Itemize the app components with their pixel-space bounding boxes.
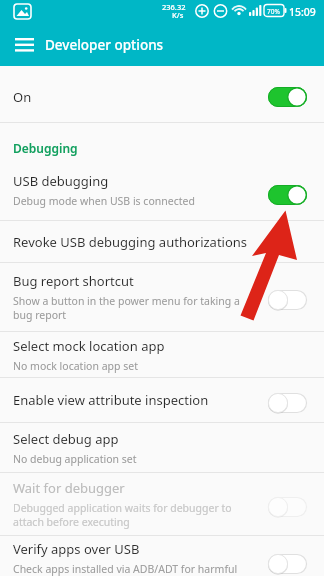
- button[interactable]: Select mock location app: [0, 332, 324, 377]
- button[interactable]: Bug report shortcut: [0, 263, 324, 331]
- button[interactable]: On: [0, 66, 324, 122]
- staticText: Wait for debugger: [13, 479, 125, 497]
- staticText: Check apps installed via ADB/ADT for har…: [13, 562, 238, 576]
- staticText: Verify apps over USB: [13, 540, 140, 558]
- staticText: Select debug app: [13, 430, 119, 448]
- staticText: Bug report shortcut: [13, 272, 134, 290]
- staticText: Enable view attribute inspection: [13, 391, 209, 409]
- button[interactable]: [8, 29, 40, 61]
- staticText: Revoke USB debugging authorizations: [13, 233, 248, 251]
- staticText: Debugged application waits for debugger …: [13, 501, 232, 529]
- staticText: Select mock location app: [13, 337, 165, 355]
- button[interactable]: USB debugging: [0, 160, 324, 220]
- staticText: USB debugging: [13, 172, 109, 190]
- staticText: On: [13, 88, 32, 106]
- staticText: Debug mode when USB is connected: [13, 194, 195, 208]
- staticText: 70%: [267, 7, 280, 16]
- staticText: Show a button in the power menu for taki…: [13, 294, 240, 322]
- staticText: K/s: [172, 10, 184, 20]
- button[interactable]: Enable view attribute inspection: [0, 378, 324, 422]
- button[interactable]: Revoke USB debugging authorizations: [0, 221, 324, 262]
- staticText: No debug application set: [13, 452, 137, 466]
- staticText: 236.32: [162, 2, 186, 12]
- staticText: Debugging: [13, 140, 78, 156]
- staticText: No mock location app set: [13, 359, 138, 373]
- button[interactable]: Wait for debugger: [0, 473, 324, 535]
- button[interactable]: Verify apps over USB: [0, 536, 324, 576]
- staticText: Developer options: [45, 36, 164, 54]
- button[interactable]: Select debug app: [0, 423, 324, 472]
- staticText: 15:09: [289, 5, 316, 19]
